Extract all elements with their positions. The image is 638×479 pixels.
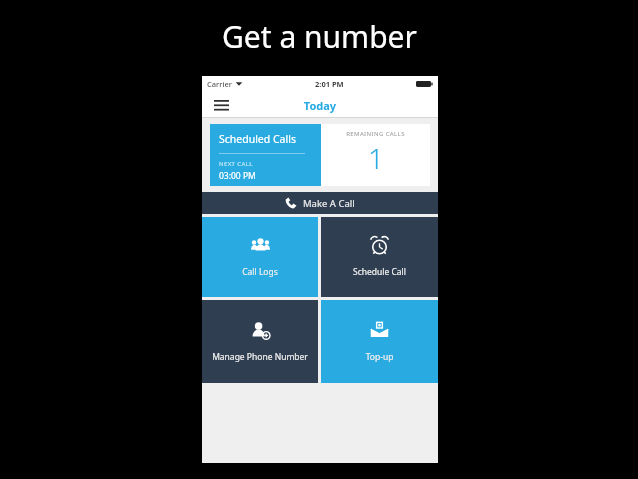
- staticText: Get a number: [222, 16, 417, 57]
- button[interactable]: Top-up: [321, 300, 438, 383]
- staticText: Call Logs: [205, 266, 315, 278]
- staticText: 03:00 PM: [219, 170, 256, 182]
- staticText: 2:01 PM: [315, 79, 344, 89]
- staticText: REMAINING CALLS: [346, 130, 405, 138]
- staticText: Scheduled Calls: [219, 132, 296, 146]
- staticText: Make A Call: [303, 197, 355, 210]
- button[interactable]: Menu: [211, 95, 231, 115]
- button[interactable]: Schedule Call: [321, 217, 438, 297]
- button[interactable]: REMAINING CALLS: [321, 124, 430, 186]
- staticText: Today: [202, 98, 438, 113]
- staticText: Carrier: [207, 79, 232, 89]
- button[interactable]: Call Logs: [202, 217, 318, 297]
- staticText: 1: [368, 139, 384, 177]
- staticText: Schedule Call: [324, 266, 435, 278]
- staticText: Top-up: [324, 351, 435, 363]
- button[interactable]: Scheduled Calls: [210, 124, 321, 186]
- button[interactable]: Make A Call: [202, 192, 438, 214]
- button[interactable]: Manage Phone Number: [202, 300, 318, 383]
- staticText: Manage Phone Number: [205, 351, 315, 363]
- staticText: NEXT CALL: [219, 160, 253, 168]
